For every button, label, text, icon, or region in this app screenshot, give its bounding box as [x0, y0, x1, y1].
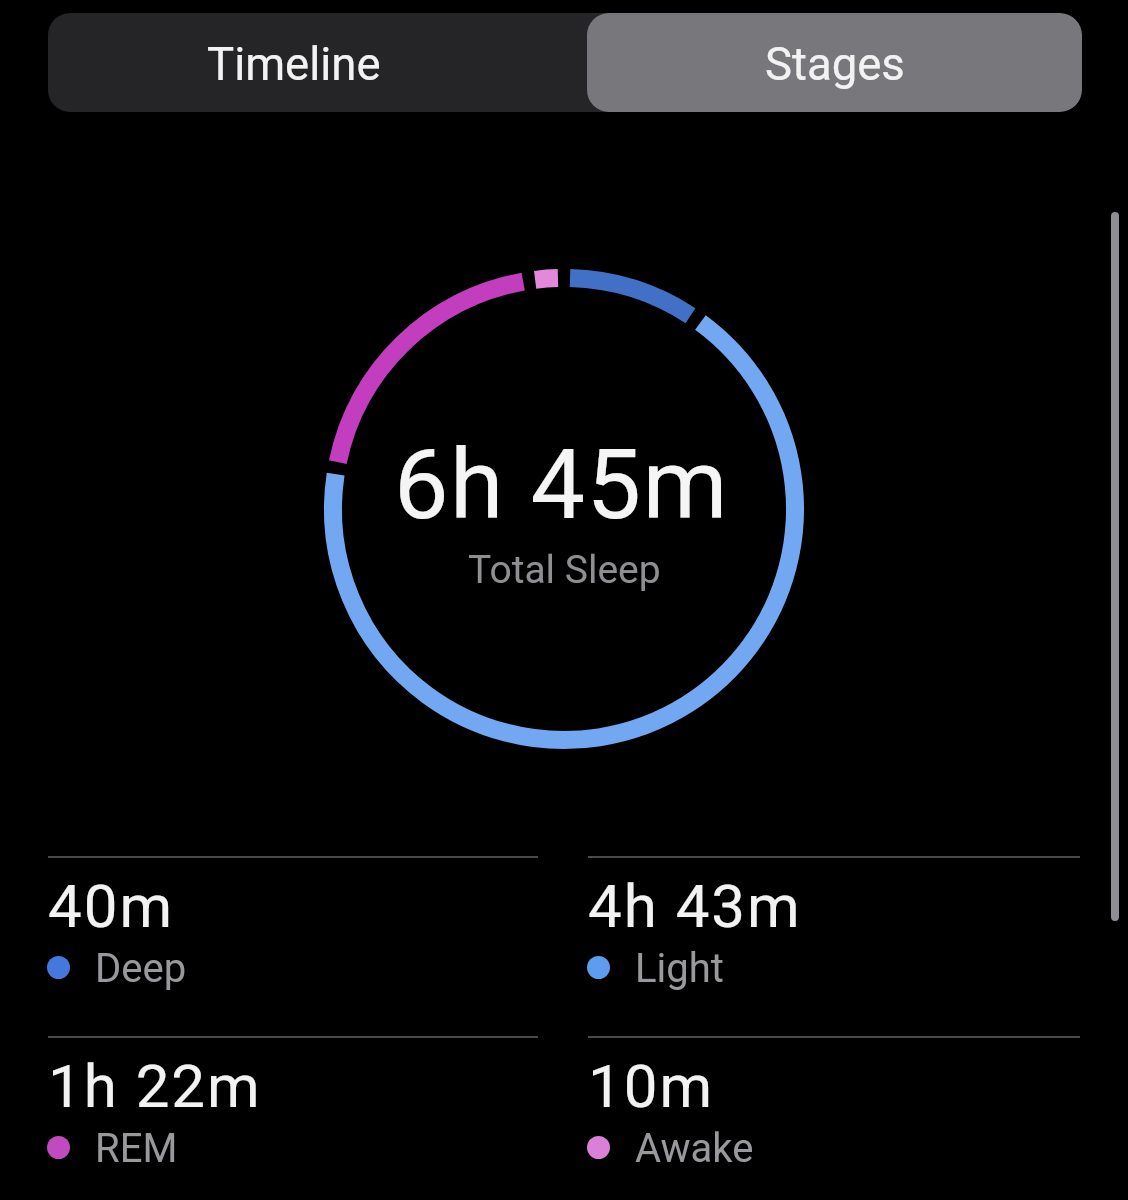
staticText: Deep	[95, 945, 187, 992]
staticText: Light	[635, 945, 724, 992]
staticText: Timeline	[207, 38, 381, 91]
staticText: Stages	[765, 38, 905, 91]
staticText: 6h 45m	[394, 428, 730, 542]
staticText: Awake	[635, 1125, 754, 1172]
staticText: 10m	[588, 1051, 715, 1121]
staticText: Total Sleep	[468, 547, 661, 593]
staticText: 4h 43m	[588, 871, 802, 941]
button[interactable]	[587, 13, 1082, 112]
staticText: 40m	[48, 871, 175, 941]
button[interactable]	[48, 13, 587, 112]
staticText: REM	[95, 1125, 178, 1172]
staticText: 1h 22m	[48, 1051, 262, 1121]
